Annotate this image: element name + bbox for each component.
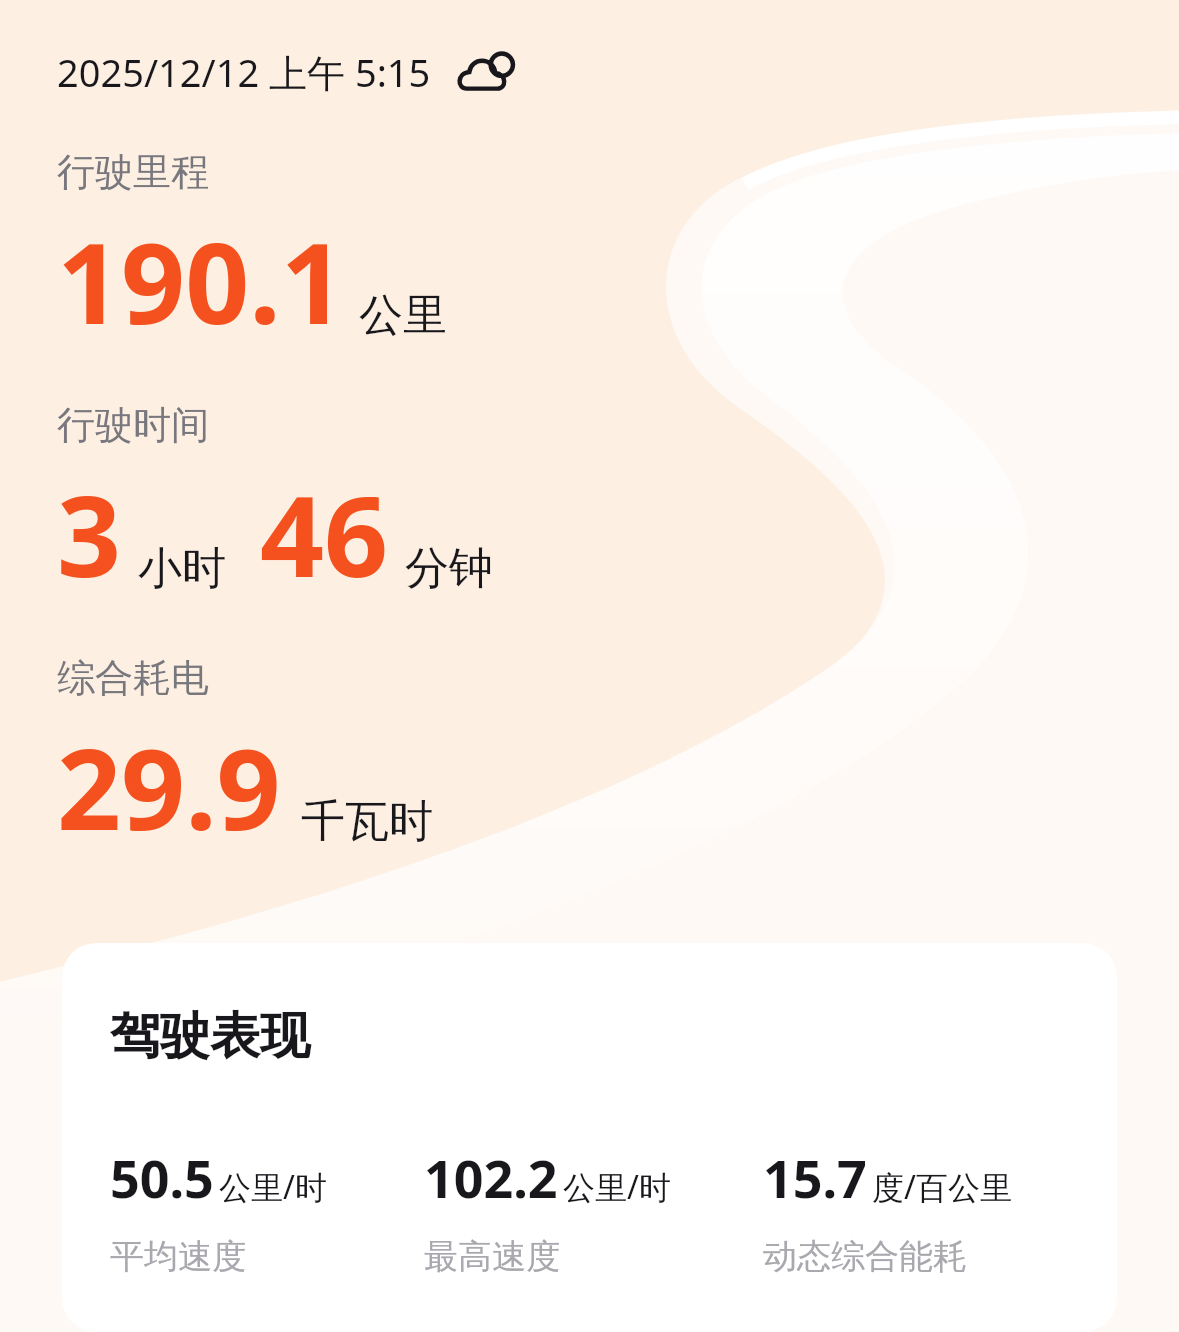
staticText: 190.1 [57,204,345,357]
staticText: 最高速度 [424,1235,560,1278]
staticText: 行驶时间 [57,401,209,449]
staticText: 29.9 [57,710,281,863]
staticText: 46 [260,457,389,610]
button[interactable]: 驾驶表现 [62,943,1117,1332]
staticText: 50.5 [110,1142,214,1213]
staticText: 度/百公里 [872,1165,1012,1209]
button[interactable]: 102.2 [406,1142,745,1278]
staticText: 千瓦时 [301,794,433,849]
staticText: 分钟 [405,541,493,596]
button[interactable]: 50.5 [92,1142,406,1278]
staticText: 小时 [138,541,226,596]
staticText: 动态综合能耗 [763,1235,967,1278]
staticText: 驾驶表现 [110,1005,310,1068]
staticText: 行驶里程 [57,148,209,196]
staticText: 2025/12/12 上午 5:15 [57,46,431,98]
staticText: 平均速度 [110,1235,246,1278]
staticText: 公里/时 [563,1165,671,1209]
button[interactable]: Weather: partly cloudy [457,46,521,98]
staticText: 3 [57,457,122,610]
staticText: 公里 [359,288,447,343]
staticText: 公里/时 [219,1165,327,1209]
staticText: 综合耗电 [57,654,209,702]
staticText: 15.7 [763,1142,867,1213]
button[interactable]: 15.7 [745,1142,1097,1278]
staticText: 102.2 [424,1142,558,1213]
